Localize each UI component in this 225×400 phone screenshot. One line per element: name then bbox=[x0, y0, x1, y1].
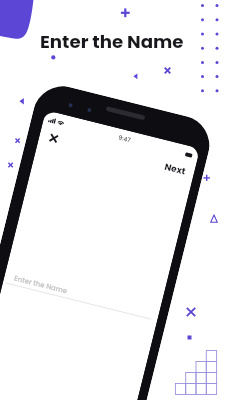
button[interactable]: Next bbox=[158, 157, 192, 182]
staticText: Enter the Name bbox=[40, 29, 184, 54]
staticText: Enter the Name bbox=[13, 274, 69, 297]
button[interactable]: Close bbox=[42, 127, 64, 149]
staticText: 9:47 bbox=[117, 134, 132, 144]
staticText: Next bbox=[163, 161, 188, 179]
